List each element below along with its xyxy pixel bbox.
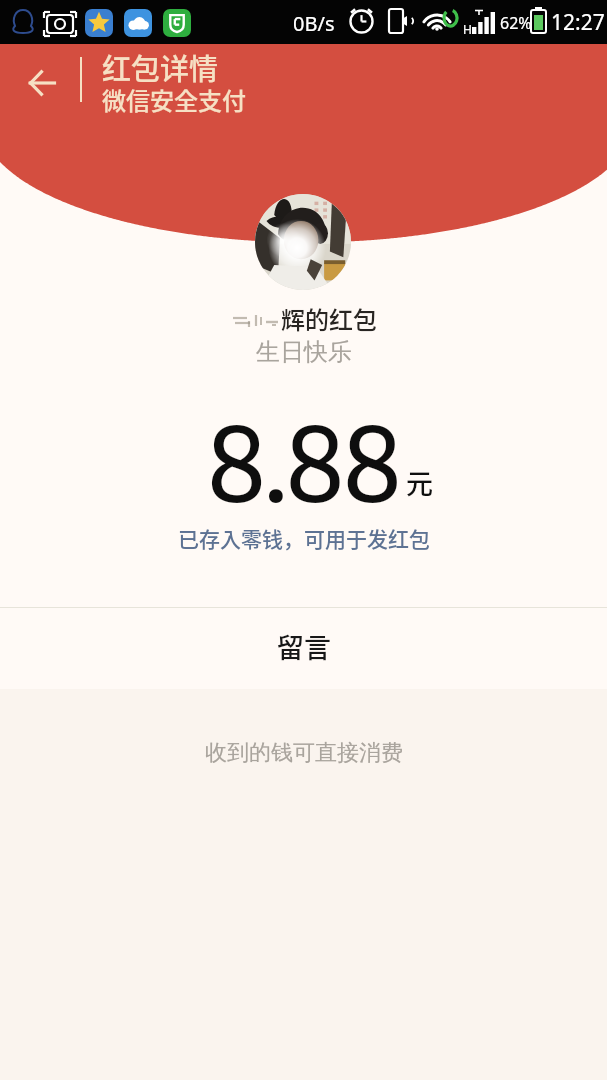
staticText: H bbox=[463, 21, 472, 37]
staticText: 12:27 bbox=[551, 8, 605, 37]
staticText: 收到的钱可直接消费 bbox=[205, 739, 403, 767]
staticText: 元 bbox=[406, 463, 433, 502]
staticText: 62% bbox=[500, 12, 532, 34]
button[interactable]: Sender avatar bbox=[255, 194, 351, 290]
button[interactable]: 留言 bbox=[0, 622, 607, 670]
staticText: 生日快乐 bbox=[256, 337, 352, 367]
staticText: 已存入零钱，可用于发红包 bbox=[178, 523, 430, 553]
button[interactable]: Back bbox=[16, 57, 68, 109]
staticText: 8.88 bbox=[208, 396, 401, 525]
staticText: 红包详情 bbox=[102, 46, 219, 88]
button[interactable]: 已存入零钱，可用于发红包 bbox=[0, 520, 607, 556]
staticText: 留言 bbox=[277, 627, 331, 666]
staticText: 微信安全支付 bbox=[102, 82, 246, 117]
staticText: 0B/s bbox=[293, 10, 335, 37]
staticText: 辉的红包 bbox=[281, 301, 377, 336]
